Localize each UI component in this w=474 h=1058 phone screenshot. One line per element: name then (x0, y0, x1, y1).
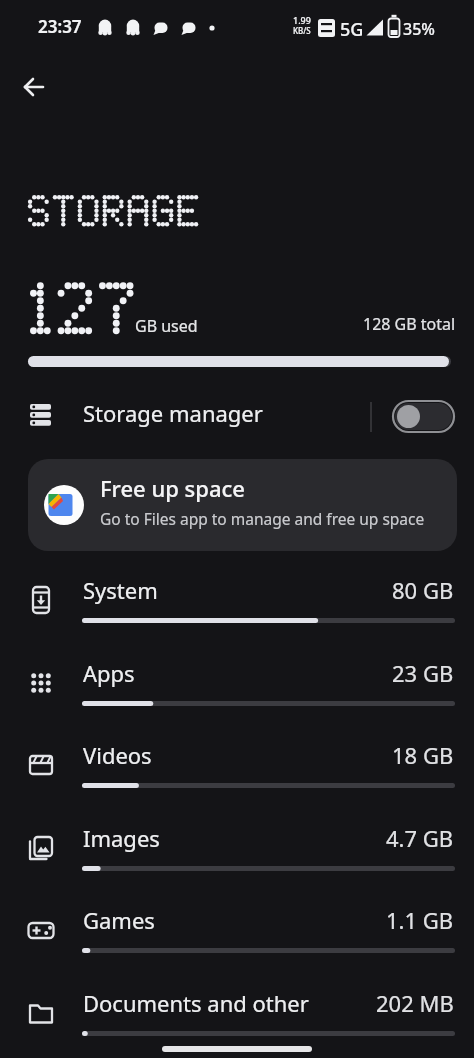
staticText: GB used (135, 315, 198, 337)
staticText: 23 GB (392, 658, 454, 688)
button[interactable]: Games (0, 900, 474, 982)
staticText: KB/S (293, 25, 311, 36)
staticText: 1.1 GB (386, 905, 454, 935)
staticText: 18 GB (392, 740, 454, 770)
staticText: Storage manager (83, 398, 263, 428)
staticText: Apps (83, 658, 135, 688)
staticText: Documents and other (83, 988, 309, 1018)
button[interactable]: Documents and other (0, 983, 474, 1058)
staticText: 5G (340, 17, 364, 42)
staticText: 128 GB total (363, 313, 456, 335)
staticText: 80 GB (392, 575, 454, 605)
button[interactable]: Free up space (28, 459, 457, 551)
staticText: 1.99 (293, 14, 311, 26)
staticText: Videos (83, 740, 152, 770)
staticText: 23:37 (38, 15, 82, 38)
button[interactable] (12, 66, 54, 108)
staticText: System (83, 575, 158, 605)
button[interactable]: Videos (0, 735, 474, 817)
staticText: 4.7 GB (386, 823, 454, 853)
staticText: Free up space (100, 473, 245, 503)
staticText: Go to Files app to manage and free up sp… (100, 508, 425, 529)
staticText: Games (83, 905, 155, 935)
staticText: Images (83, 823, 160, 853)
button[interactable]: Storage manager (0, 392, 474, 442)
button[interactable]: System (0, 570, 474, 652)
staticText: 202 MB (376, 988, 454, 1018)
staticText: 35% (403, 18, 435, 40)
button[interactable]: Apps (0, 653, 474, 735)
button[interactable]: Images (0, 818, 474, 900)
